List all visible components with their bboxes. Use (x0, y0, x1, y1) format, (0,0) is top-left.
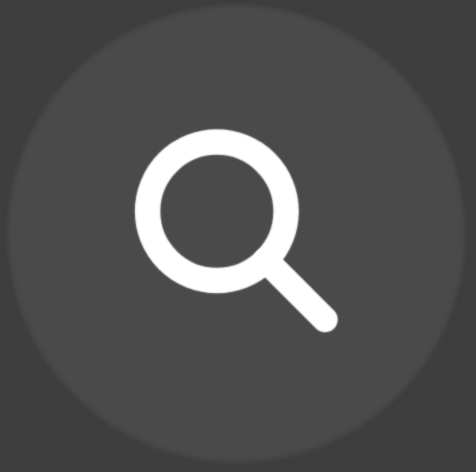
button[interactable]: Search (8, 6, 465, 463)
